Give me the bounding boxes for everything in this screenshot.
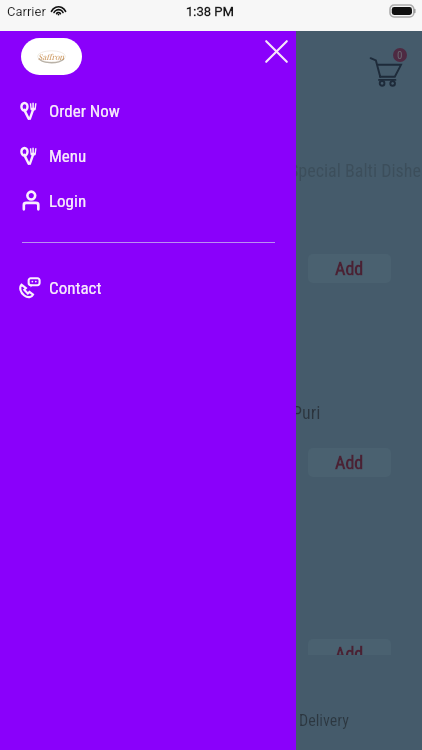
staticText: Add <box>335 258 364 279</box>
button[interactable]: Saffron <box>21 38 82 75</box>
button[interactable]: Login <box>0 178 296 223</box>
staticText: Puri <box>292 402 321 423</box>
staticText: Menu <box>49 146 87 166</box>
staticText: Carrier <box>7 4 46 19</box>
button[interactable]: Order Now <box>0 88 296 133</box>
staticText: Contact <box>49 278 102 298</box>
button[interactable]: Contact <box>0 265 296 310</box>
button[interactable]: Add <box>308 254 391 283</box>
staticText: Add <box>335 452 364 473</box>
staticText: Login <box>49 191 87 211</box>
staticText: Saffron <box>38 51 65 62</box>
staticText: Special Balti Dishes <box>289 160 422 181</box>
button[interactable]: Add <box>308 448 391 477</box>
button[interactable]: Add <box>308 639 391 655</box>
button[interactable]: Close drawer <box>254 29 299 74</box>
staticText: Order Now <box>49 101 120 121</box>
staticText: 0 <box>397 49 403 62</box>
staticText: Delivery <box>299 711 349 730</box>
button[interactable]: Menu <box>0 133 296 178</box>
staticText: Add <box>335 643 364 655</box>
button[interactable]: Cart <box>368 46 412 90</box>
staticText: 1:38 PM <box>186 4 234 19</box>
